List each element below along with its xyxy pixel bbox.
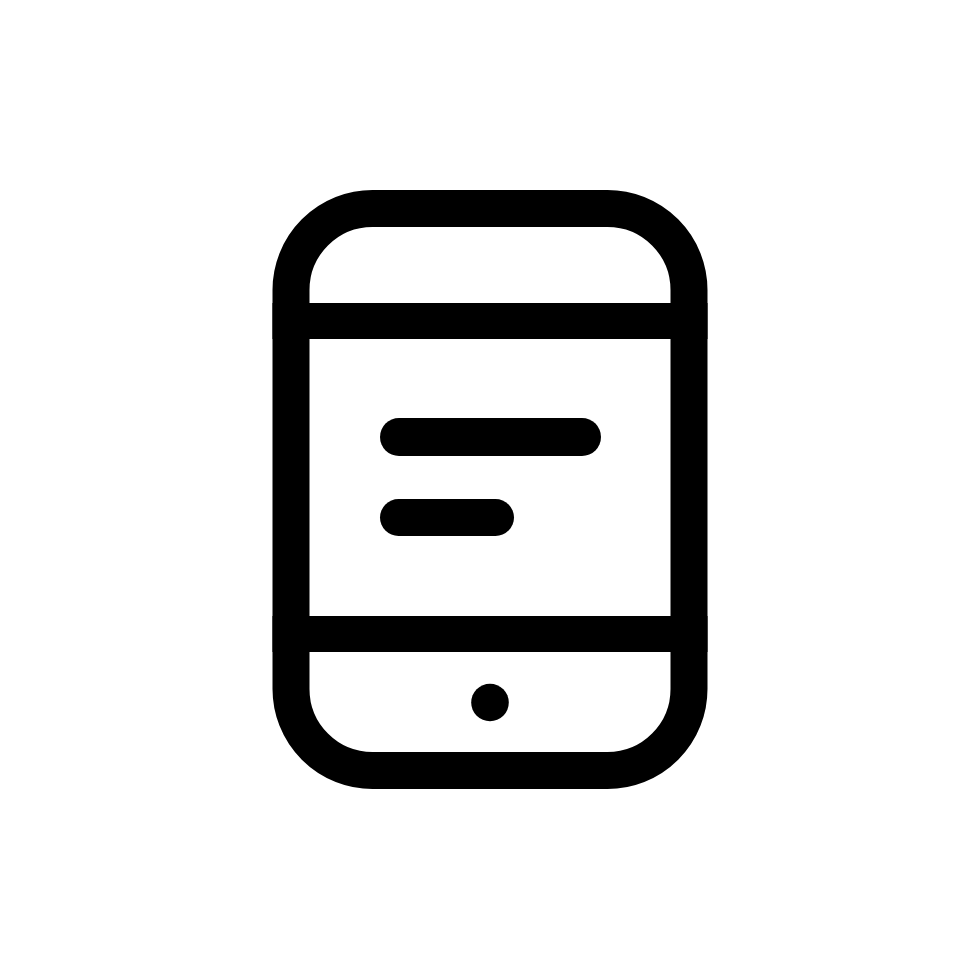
button[interactable]: Mobile device [0, 0, 980, 980]
